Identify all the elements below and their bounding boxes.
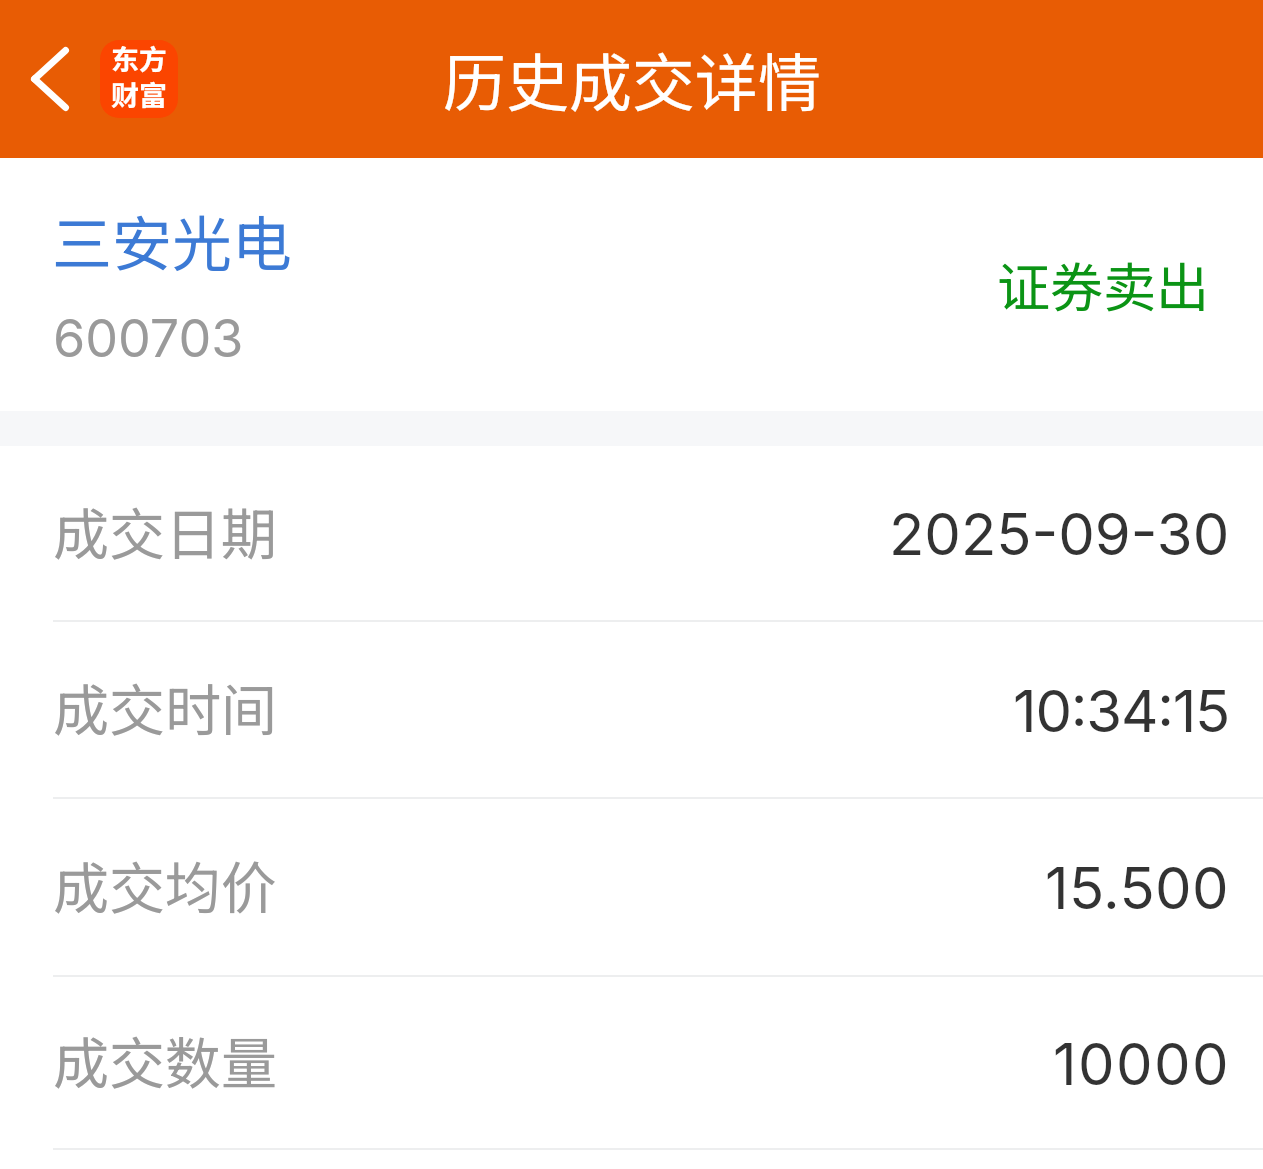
staticText: 15.500: [1045, 853, 1230, 923]
staticText: 证券卖出: [997, 246, 1209, 323]
staticText: 10000: [1053, 1029, 1230, 1099]
staticText: 三安光电: [52, 196, 292, 283]
button[interactable]: 成交数量: [0, 977, 1263, 1150]
button[interactable]: Back: [31, 40, 178, 118]
staticText: 成交日期: [53, 490, 277, 571]
staticText: 成交均价: [53, 844, 277, 925]
button[interactable]: 三安光电: [0, 158, 1263, 411]
staticText: 600703: [53, 307, 244, 370]
staticText: 财富: [111, 74, 168, 115]
staticText: 东方: [111, 40, 168, 79]
staticText: 成交时间: [53, 666, 277, 747]
button[interactable]: 成交时间: [0, 622, 1263, 799]
staticText: 成交数量: [53, 1019, 277, 1100]
staticText: 2025-09-30: [889, 499, 1230, 569]
button[interactable]: 成交日期: [0, 446, 1263, 622]
staticText: 历史成交详情: [443, 33, 821, 124]
staticText: 10:34:15: [1013, 676, 1230, 746]
button[interactable]: 成交均价: [0, 799, 1263, 977]
